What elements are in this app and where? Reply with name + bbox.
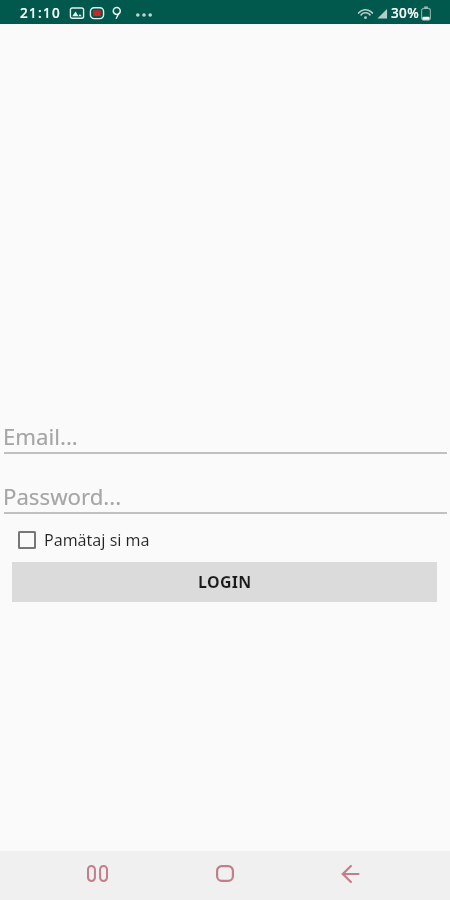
staticText: 30% [391,4,420,22]
staticText: Password... [3,481,122,511]
staticText: 21:10 [20,4,62,22]
staticText: Email... [3,421,78,451]
button[interactable]: Pamätaj si ma [18,526,150,554]
staticText: LOGIN [198,571,252,593]
staticText: Pamätaj si ma [44,529,150,551]
button[interactable]: Email... [4,421,447,454]
button[interactable]: Back [325,851,374,900]
button[interactable]: Recent apps [73,851,122,900]
button[interactable]: Password... [4,481,447,514]
button[interactable]: Home [200,851,249,900]
button[interactable]: LOGIN [12,562,437,602]
